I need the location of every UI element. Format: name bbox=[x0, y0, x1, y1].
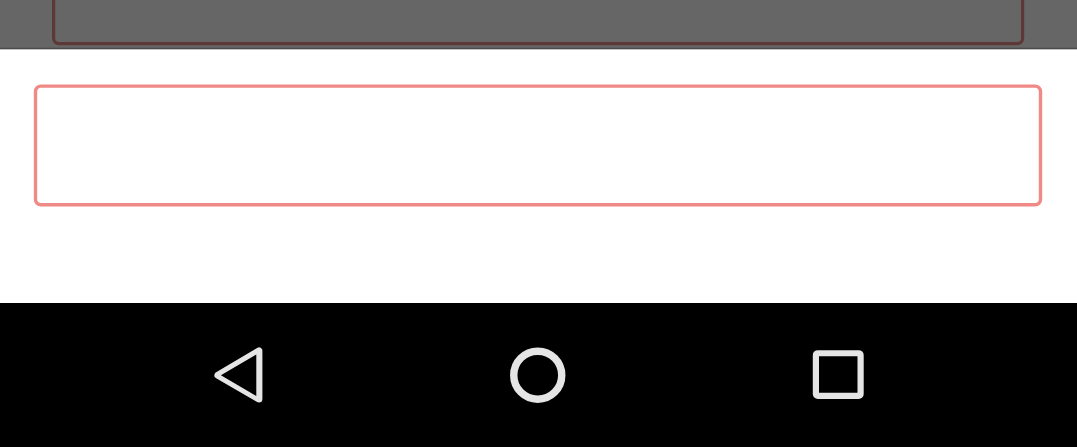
button[interactable]: Text field bbox=[34, 84, 1043, 208]
button[interactable]: Dismiss bbox=[0, 0, 1077, 49]
button[interactable]: Home bbox=[388, 303, 688, 447]
button[interactable]: Back bbox=[88, 303, 388, 447]
button[interactable]: Recent apps bbox=[688, 303, 988, 447]
